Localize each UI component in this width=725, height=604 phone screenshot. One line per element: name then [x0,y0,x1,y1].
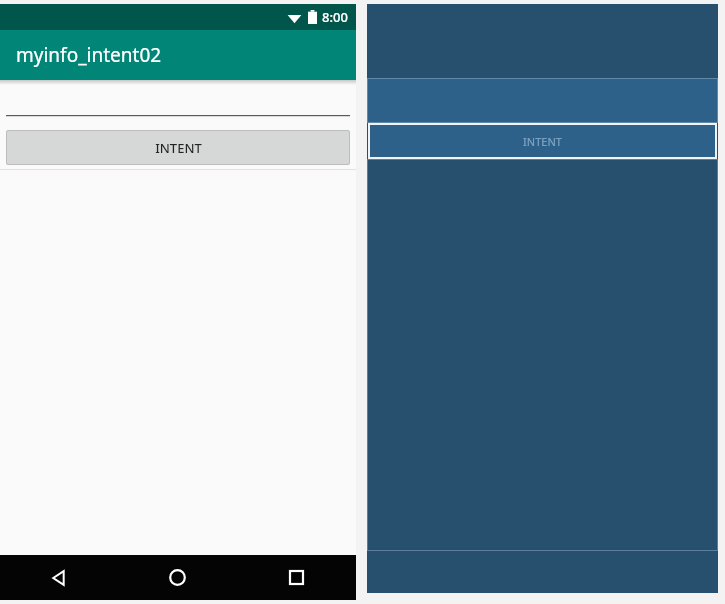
button[interactable]: Home [118,555,237,600]
staticText: myinfo_intent02 [16,42,162,68]
button[interactable]: INTENT [368,123,717,159]
staticText: INTENT [523,134,562,149]
staticText: 8:00 [322,8,348,26]
button[interactable] [6,86,350,117]
button[interactable]: INTENT [6,130,350,165]
button[interactable]: Recent apps [237,555,356,600]
button[interactable]: Back [0,555,118,600]
button[interactable] [367,78,718,123]
staticText: INTENT [155,139,202,157]
